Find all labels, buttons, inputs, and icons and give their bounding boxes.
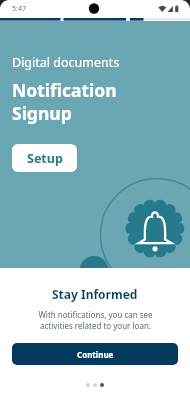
button[interactable]: Continue [12, 343, 178, 365]
staticText: Setup [27, 150, 63, 167]
staticText: 5:47 [12, 4, 26, 14]
button[interactable]: Setup [12, 144, 77, 172]
staticText: Digital documents [12, 54, 120, 71]
staticText: With notifications, you can see activiti… [38, 309, 153, 331]
staticText: Continue [77, 349, 114, 360]
staticText: Notification Signup [12, 78, 117, 125]
staticText: Stay Informed [52, 286, 138, 302]
